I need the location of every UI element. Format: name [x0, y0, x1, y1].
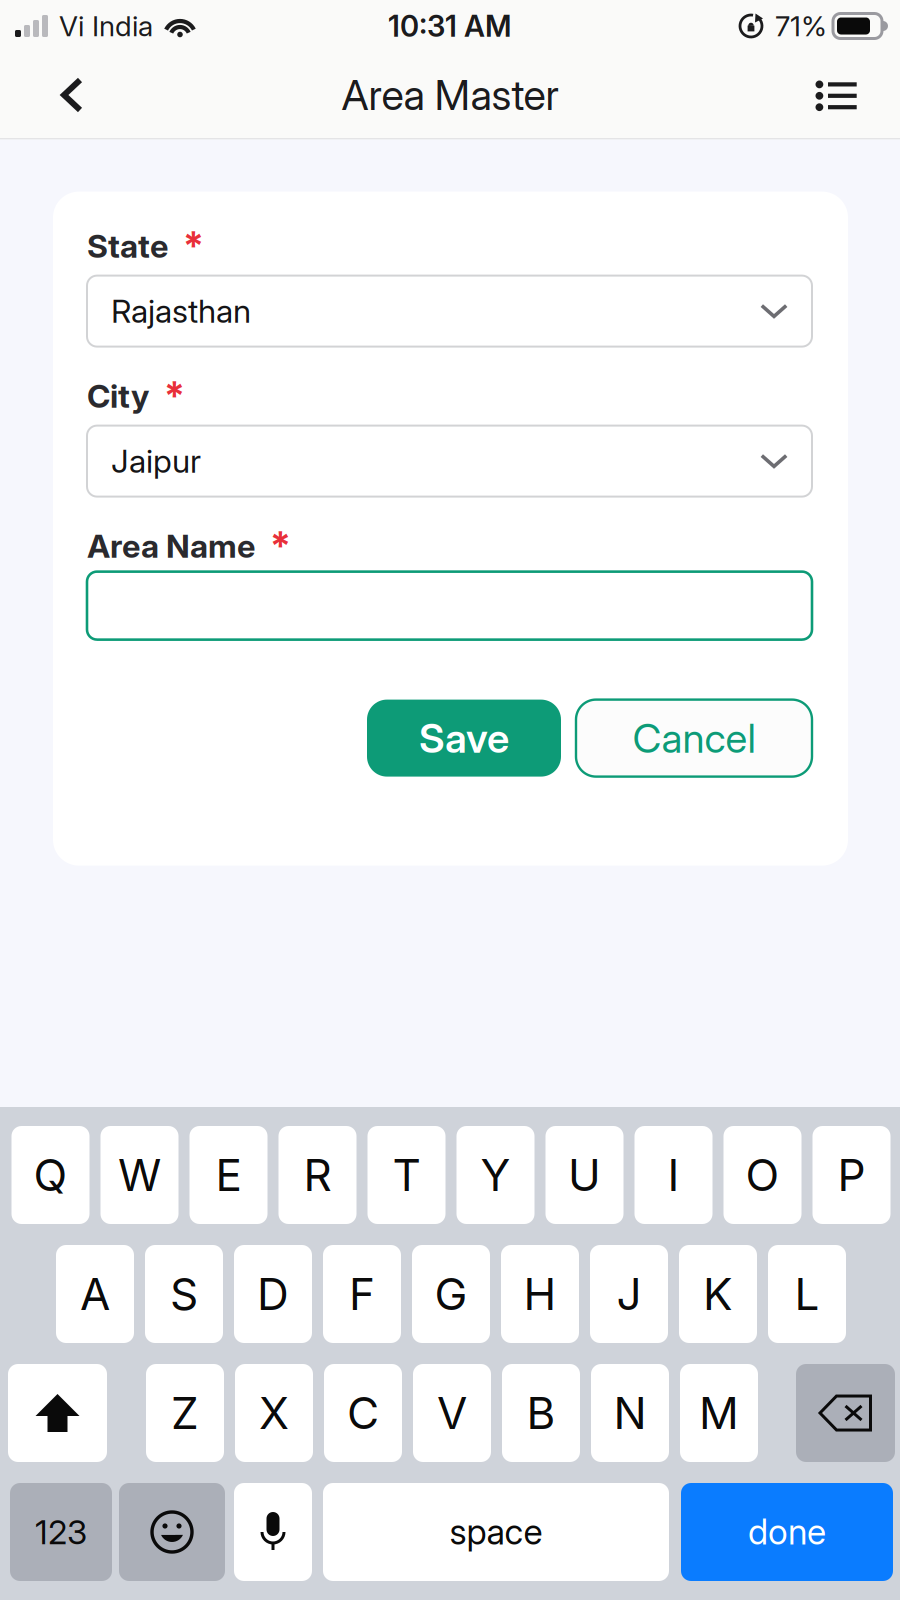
button[interactable]: T — [367, 1126, 445, 1224]
button[interactable]: space — [323, 1483, 669, 1581]
staticText: R — [303, 1148, 331, 1202]
button[interactable]: Delete — [796, 1364, 895, 1462]
staticText: Jaipur — [111, 442, 201, 480]
button[interactable]: Q — [11, 1126, 89, 1224]
staticText: J — [616, 1267, 641, 1321]
button[interactable]: Jaipur — [87, 426, 812, 497]
staticText: 10:31 AM — [388, 8, 512, 44]
staticText: * — [164, 373, 185, 419]
button[interactable]: 123 — [10, 1483, 112, 1581]
staticText: O — [745, 1148, 779, 1202]
button[interactable]: U — [545, 1126, 623, 1224]
staticText: Q — [33, 1148, 67, 1202]
button[interactable]: O — [723, 1126, 801, 1224]
staticText: K — [703, 1267, 733, 1321]
button[interactable]: Back — [16, 52, 128, 138]
staticText: Rajasthan — [111, 292, 251, 330]
button[interactable]: done — [681, 1483, 893, 1581]
staticText: B — [526, 1386, 555, 1440]
button[interactable]: Dictate — [234, 1483, 312, 1581]
button[interactable]: S — [145, 1245, 223, 1343]
button[interactable]: D — [234, 1245, 312, 1343]
staticText: Vi India — [59, 9, 153, 43]
staticText: Cancel — [632, 714, 755, 762]
staticText: P — [837, 1148, 865, 1202]
staticText: A — [80, 1267, 110, 1321]
button[interactable]: Cancel — [576, 700, 812, 777]
button[interactable]: J — [590, 1245, 668, 1343]
staticText: T — [392, 1148, 420, 1202]
staticText: D — [257, 1267, 289, 1321]
button[interactable]: K — [679, 1245, 757, 1343]
staticText: E — [215, 1148, 241, 1202]
button[interactable]: W — [100, 1126, 178, 1224]
staticText: I — [667, 1148, 679, 1202]
staticText: space — [449, 1511, 542, 1553]
button[interactable]: H — [501, 1245, 579, 1343]
staticText: X — [259, 1386, 289, 1440]
button[interactable]: R — [278, 1126, 356, 1224]
staticText: 71% — [775, 9, 827, 43]
button[interactable]: Save — [367, 700, 561, 777]
staticText: W — [118, 1148, 161, 1202]
button[interactable]: C — [324, 1364, 402, 1462]
staticText: S — [170, 1267, 198, 1321]
staticText: V — [437, 1386, 467, 1440]
button[interactable]: Shift — [8, 1364, 107, 1462]
staticText: C — [347, 1386, 379, 1440]
staticText: * — [183, 223, 204, 269]
staticText: N — [613, 1386, 646, 1440]
staticText: F — [349, 1267, 375, 1321]
button[interactable]: Area Name — [87, 572, 812, 640]
staticText: Z — [171, 1386, 199, 1440]
button[interactable]: G — [412, 1245, 490, 1343]
button[interactable]: Rajasthan — [87, 276, 812, 347]
button[interactable]: Z — [146, 1364, 224, 1462]
button[interactable]: N — [591, 1364, 669, 1462]
staticText: 123 — [35, 1512, 87, 1552]
staticText: Area Name — [87, 527, 255, 565]
staticText: Y — [480, 1148, 510, 1202]
staticText: State — [87, 227, 168, 265]
button[interactable]: F — [323, 1245, 401, 1343]
button[interactable]: Y — [456, 1126, 534, 1224]
button[interactable]: A — [56, 1245, 134, 1343]
button[interactable]: E — [189, 1126, 267, 1224]
staticText: * — [270, 523, 291, 569]
staticText: H — [523, 1267, 556, 1321]
staticText: M — [699, 1386, 739, 1440]
button[interactable]: L — [768, 1245, 846, 1343]
button[interactable]: B — [502, 1364, 580, 1462]
button[interactable]: I — [634, 1126, 712, 1224]
button[interactable]: Menu — [781, 52, 893, 138]
staticText: Save — [419, 714, 509, 762]
button[interactable]: V — [413, 1364, 491, 1462]
button[interactable]: Emoji — [119, 1483, 225, 1581]
button[interactable]: X — [235, 1364, 313, 1462]
staticText: U — [568, 1148, 601, 1202]
button[interactable]: M — [680, 1364, 758, 1462]
button[interactable]: P — [812, 1126, 890, 1224]
staticText: done — [748, 1511, 826, 1553]
staticText: G — [434, 1267, 467, 1321]
staticText: L — [794, 1267, 819, 1321]
staticText: Area Master — [341, 70, 558, 120]
staticText: City — [87, 377, 149, 415]
